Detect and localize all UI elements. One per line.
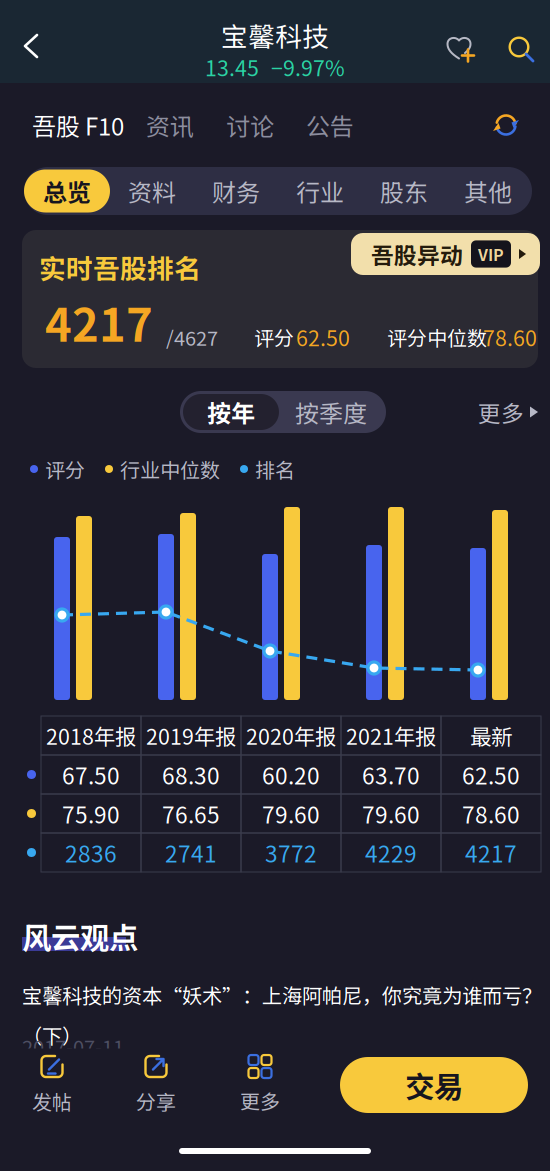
- staticText: 分享: [136, 1086, 176, 1115]
- staticText: 79.60: [262, 797, 320, 830]
- staticText: 按季度: [295, 395, 367, 429]
- button[interactable]: 发帖: [4, 1048, 100, 1122]
- button[interactable]: Search: [494, 18, 544, 76]
- staticText: 2017-07-11: [22, 1031, 124, 1060]
- staticText: 68.30: [162, 758, 220, 791]
- staticText: 2020年报: [246, 720, 336, 751]
- staticText: 按年: [207, 395, 255, 429]
- staticText: 13.45: [205, 52, 259, 82]
- button[interactable]: 按季度: [279, 394, 383, 430]
- staticText: 2741: [165, 836, 217, 869]
- staticText: 总览: [43, 174, 91, 208]
- button[interactable]: 按年: [183, 394, 279, 430]
- staticText: 60.20: [262, 758, 320, 791]
- staticText: 总览: [44, 174, 92, 208]
- staticText: 资讯: [146, 108, 194, 142]
- staticText: 公告: [306, 108, 354, 142]
- staticText: 评分中位数: [387, 322, 487, 351]
- staticText: 最新: [470, 720, 512, 751]
- button[interactable]: 更多: [212, 1048, 308, 1122]
- staticText: 吾股异动: [371, 238, 463, 270]
- button[interactable]: 讨论: [214, 101, 286, 149]
- staticText: 资料: [128, 174, 176, 208]
- staticText: 更多: [240, 1086, 280, 1115]
- button[interactable]: Refresh: [480, 99, 532, 151]
- staticText: 62.50: [296, 322, 350, 352]
- button[interactable]: 吾股异动: [351, 233, 540, 275]
- staticText: 排名: [255, 454, 295, 483]
- staticText: 其他: [464, 174, 512, 208]
- staticText: 78.60: [483, 322, 537, 352]
- staticText: 发帖: [32, 1086, 72, 1115]
- button[interactable]: 资讯: [134, 101, 206, 149]
- button[interactable]: 行业: [278, 167, 362, 215]
- staticText: 2018年报: [46, 720, 136, 751]
- staticText: 评分: [45, 454, 85, 483]
- button[interactable]: 总览: [24, 169, 110, 212]
- staticText: 62.50: [462, 758, 520, 791]
- button[interactable]: 更多: [466, 391, 550, 433]
- staticText: 79.60: [362, 797, 420, 830]
- button[interactable]: Add to watchlist: [433, 18, 485, 76]
- staticText: 评分: [254, 322, 294, 351]
- staticText: 宝馨科技: [221, 16, 329, 54]
- button[interactable]: 总览: [26, 167, 110, 215]
- staticText: 吾股 F10: [32, 108, 124, 142]
- staticText: 4217: [465, 836, 517, 869]
- staticText: VIP: [478, 242, 504, 266]
- button[interactable]: Back: [4, 16, 58, 76]
- staticText: /4627: [166, 322, 218, 351]
- staticText: 3772: [265, 836, 317, 869]
- staticText: 风云观点: [22, 915, 138, 957]
- staticText: 讨论: [226, 108, 274, 142]
- staticText: 行业中位数: [120, 454, 220, 483]
- staticText: −9.97%: [271, 52, 345, 82]
- staticText: 63.70: [362, 758, 420, 791]
- staticText: 2019年报: [146, 720, 236, 751]
- button[interactable]: 公告: [294, 101, 366, 149]
- staticText: 2021年报: [346, 720, 436, 751]
- staticText: 实时吾股排名: [39, 248, 201, 286]
- staticText: 78.60: [462, 797, 520, 830]
- staticText: 交易: [405, 1064, 463, 1106]
- staticText: 2836: [65, 836, 117, 869]
- staticText: （下）: [22, 1020, 82, 1050]
- button[interactable]: 财务: [194, 167, 278, 215]
- staticText: 更多: [478, 396, 524, 428]
- staticText: 宝馨科技的资本“妖术”：上海阿帕尼，你究竟为谁而亏？: [22, 980, 542, 1009]
- button[interactable]: 其他: [446, 167, 530, 215]
- staticText: 4217: [45, 289, 153, 355]
- staticText: 75.90: [62, 797, 120, 830]
- staticText: 股东: [380, 174, 428, 208]
- button[interactable]: 交易: [340, 1057, 528, 1113]
- button[interactable]: 股东: [362, 167, 446, 215]
- button[interactable]: 吾股 F10: [22, 101, 134, 149]
- button[interactable]: 资料: [110, 167, 194, 215]
- staticText: 67.50: [62, 758, 120, 791]
- staticText: 4229: [365, 836, 417, 869]
- staticText: 76.65: [162, 797, 220, 830]
- staticText: 财务: [212, 174, 260, 208]
- staticText: 行业: [296, 174, 344, 208]
- button[interactable]: 分享: [108, 1048, 204, 1122]
